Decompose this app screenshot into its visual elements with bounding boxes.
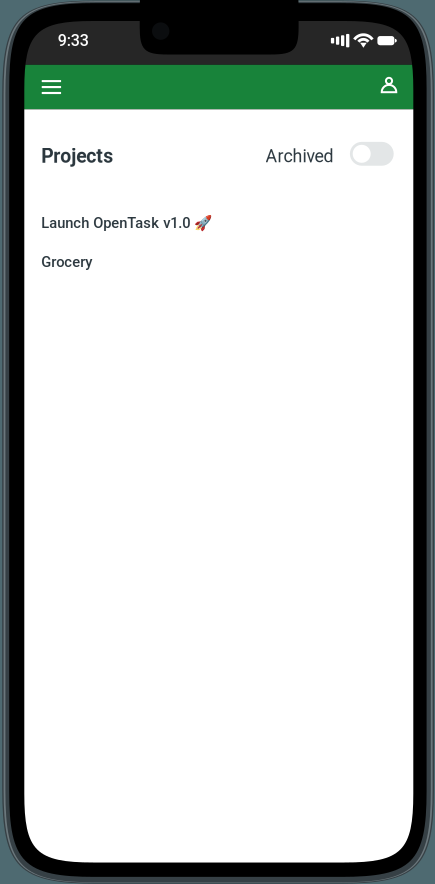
button[interactable]: Show archived projects [350,142,394,170]
button[interactable]: Open navigation menu [27,65,75,109]
staticText: Projects [41,145,113,167]
button[interactable]: Launch OpenTask v1.0 🚀 [24,203,413,242]
button[interactable]: Grocery [24,242,413,282]
staticText: Grocery [41,253,92,271]
staticText: Launch OpenTask v1.0 🚀 [41,214,212,232]
button[interactable]: Account [365,65,413,109]
staticText: Archived [266,146,334,166]
staticText: 9:33 [58,31,89,50]
